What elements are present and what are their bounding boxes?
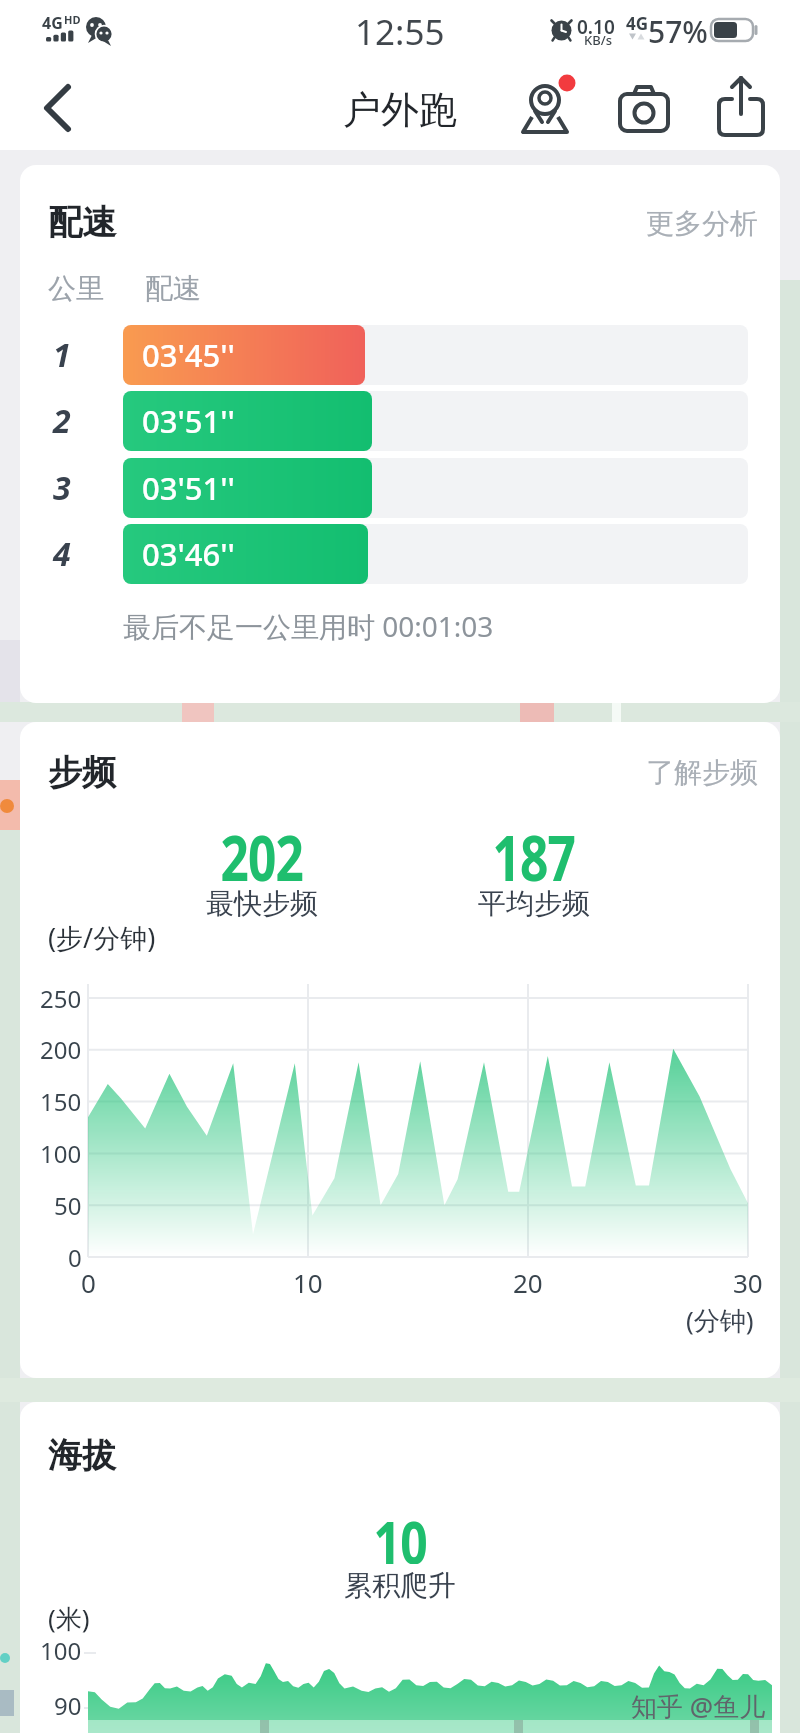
button[interactable]: [712, 70, 772, 140]
staticText: 50: [54, 1189, 82, 1222]
staticText: 202: [220, 815, 304, 883]
staticText: 3: [53, 466, 71, 510]
staticText: 平均步频: [478, 886, 590, 921]
staticText: 200: [40, 1033, 82, 1066]
staticText: 03'51'': [142, 400, 235, 442]
staticText: (米): [48, 1600, 90, 1636]
staticText: 100: [40, 1137, 82, 1170]
staticText: 配速: [48, 201, 116, 244]
staticText: 步频: [48, 751, 116, 794]
staticText: 海拔: [48, 1434, 116, 1477]
staticText: 知乎 @鱼儿: [631, 1688, 766, 1722]
staticText: 30: [733, 1265, 763, 1300]
staticText: 100: [40, 1634, 82, 1667]
staticText: 187: [492, 815, 576, 883]
staticText: 0.10: [577, 14, 615, 34]
staticText: 0: [81, 1265, 96, 1300]
button[interactable]: 了解步频: [580, 754, 758, 790]
staticText: 4G: [626, 12, 649, 34]
staticText: 57%: [648, 11, 708, 47]
button[interactable]: [123, 524, 368, 584]
staticText: 250: [40, 982, 82, 1015]
button[interactable]: [123, 391, 372, 451]
staticText: KB/s: [584, 31, 613, 46]
staticText: 配速: [145, 271, 201, 306]
staticText: 10: [293, 1265, 323, 1300]
staticText: 公里: [48, 271, 104, 306]
staticText: 03'46'': [142, 533, 235, 575]
staticText: 03'51'': [142, 467, 235, 509]
staticText: 1: [53, 333, 71, 377]
staticText: 0: [68, 1241, 82, 1274]
staticText: (分钟): [686, 1302, 754, 1338]
button[interactable]: [30, 76, 90, 140]
staticText: 20: [513, 1265, 543, 1300]
staticText: 累积爬升: [344, 1568, 456, 1603]
button[interactable]: [614, 80, 674, 136]
staticText: 更多分析: [646, 206, 758, 241]
staticText: 03'45'': [142, 334, 235, 376]
staticText: 10: [374, 1500, 427, 1564]
staticText: (步/分钟): [48, 919, 156, 955]
button[interactable]: [515, 70, 581, 140]
staticText: 4G: [42, 12, 63, 30]
button[interactable]: 更多分析: [580, 205, 758, 241]
staticText: 90: [54, 1689, 82, 1722]
staticText: 最快步频: [206, 886, 318, 921]
staticText: 户外跑: [343, 86, 457, 132]
staticText: HD: [64, 12, 81, 25]
staticText: 4: [53, 532, 71, 576]
staticText: 2: [53, 399, 71, 443]
button[interactable]: [123, 458, 372, 518]
staticText: 150: [40, 1085, 82, 1118]
button[interactable]: [123, 325, 365, 385]
staticText: 了解步频: [646, 755, 758, 790]
staticText: 最后不足一公里用时 00:01:03: [123, 607, 494, 643]
staticText: 12:55: [355, 8, 445, 52]
